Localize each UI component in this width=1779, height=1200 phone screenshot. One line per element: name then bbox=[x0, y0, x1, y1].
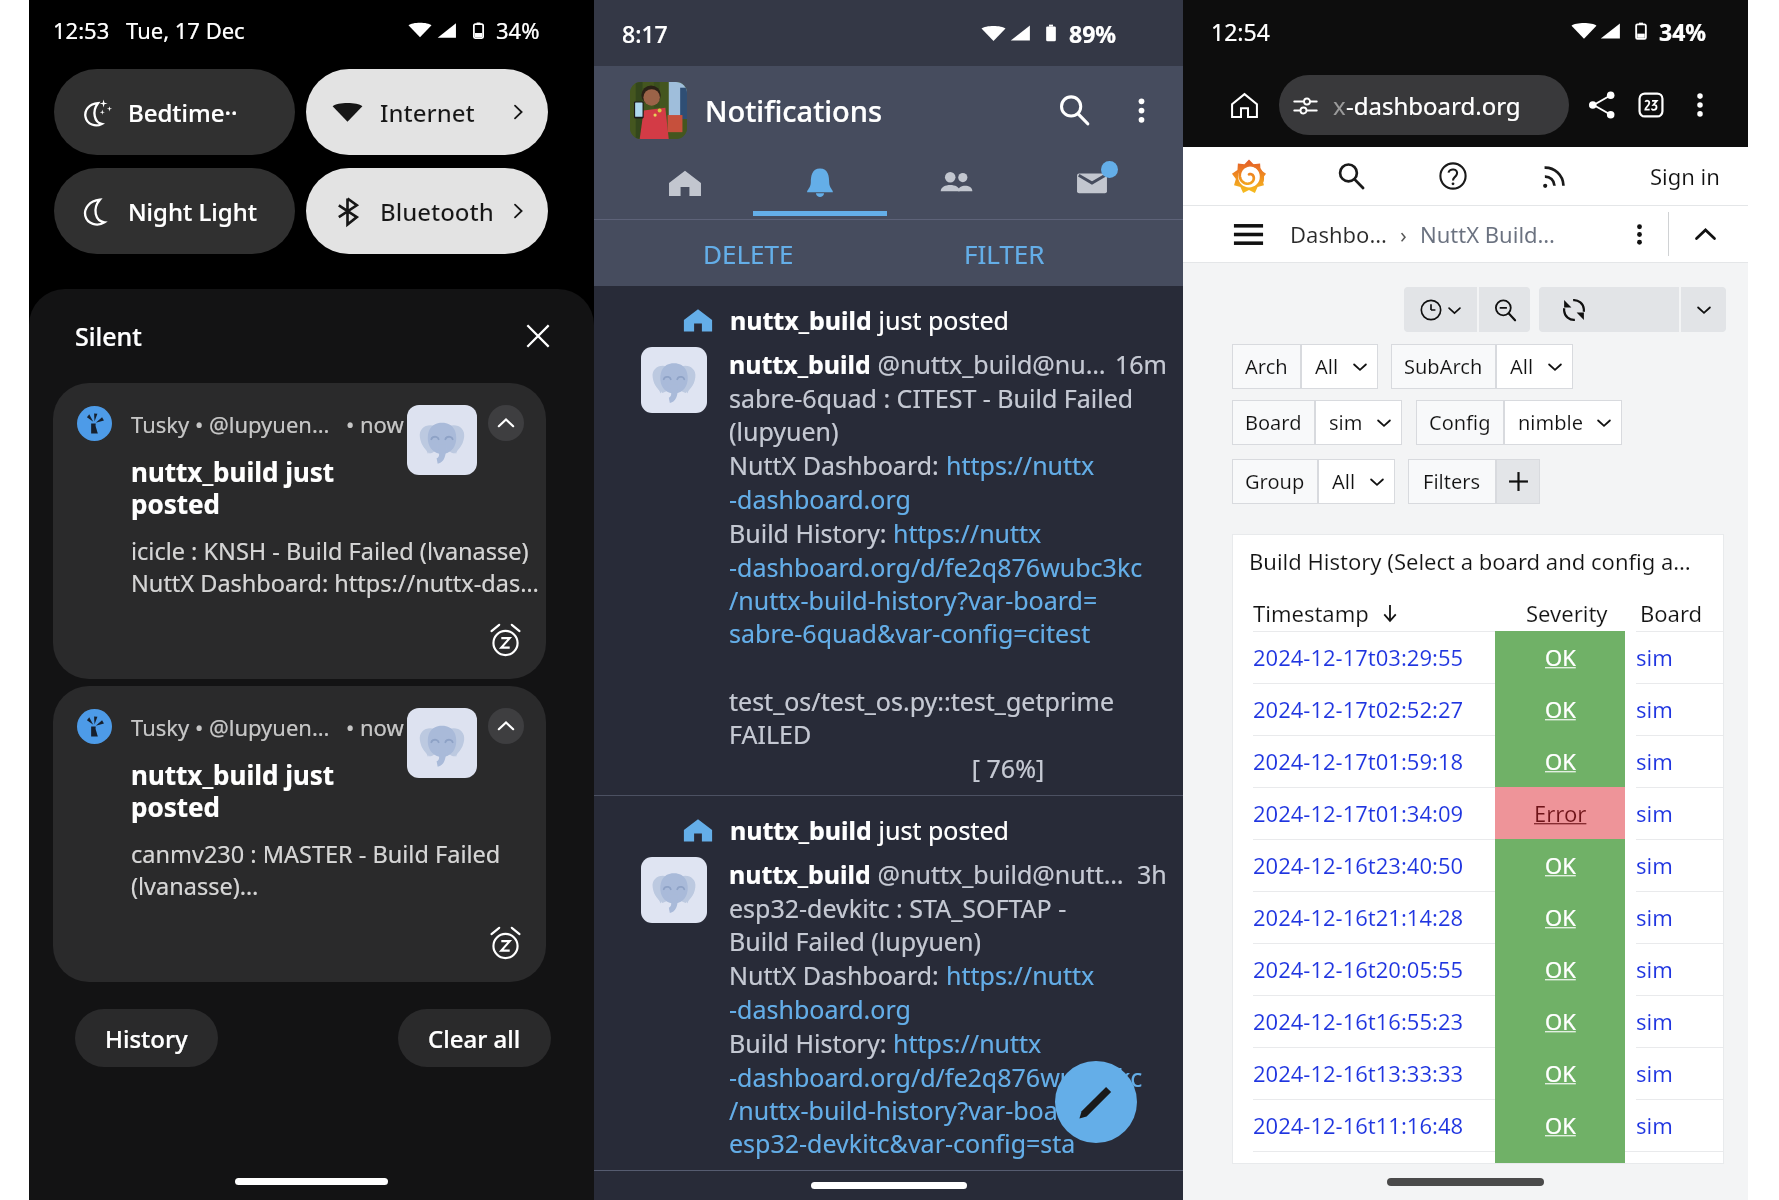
button[interactable]: DELETE bbox=[620, 220, 876, 286]
button[interactable]: nuttx_build bbox=[594, 796, 1183, 1170]
staticText: Internet bbox=[380, 96, 508, 129]
staticText: DELETE bbox=[703, 236, 794, 271]
staticText: OK bbox=[1545, 694, 1576, 724]
button[interactable]: 2024-12-16t20:05:55 bbox=[1232, 943, 1724, 995]
button[interactable]: 2024-12-16t21:14:28 bbox=[1232, 891, 1724, 943]
button[interactable]: Expand bbox=[488, 708, 524, 744]
button[interactable]: nuttx_build bbox=[594, 286, 1183, 795]
button[interactable]: Night Light bbox=[54, 168, 295, 254]
button[interactable]: Filters bbox=[1408, 459, 1496, 504]
staticText: 2024-12-17t01:34:09 bbox=[1253, 798, 1464, 828]
button[interactable]: Messages bbox=[1024, 154, 1160, 211]
button[interactable]: Share bbox=[1578, 81, 1626, 129]
button[interactable]: Menu bbox=[1226, 212, 1270, 256]
button[interactable]: Arch bbox=[1232, 344, 1301, 389]
staticText: nuttx_build bbox=[730, 813, 872, 847]
button[interactable]: Tabs bbox=[1627, 81, 1675, 129]
button[interactable]: Grafana bbox=[1227, 154, 1271, 198]
button[interactable]: All bbox=[1318, 459, 1395, 504]
button[interactable]: Search bbox=[1047, 83, 1101, 137]
button[interactable]: Clear all bbox=[398, 1009, 551, 1067]
button[interactable]: Zoom out bbox=[1479, 287, 1530, 332]
button[interactable]: FILTER bbox=[876, 220, 1133, 286]
button[interactable]: Snooze bbox=[486, 620, 524, 658]
button[interactable]: sim bbox=[1315, 400, 1402, 445]
staticText: • now bbox=[346, 712, 404, 742]
staticText: nuttx_build just posted bbox=[131, 454, 335, 522]
button[interactable]: Home bbox=[1219, 80, 1269, 130]
staticText: 34% bbox=[1659, 16, 1707, 47]
button[interactable]: 2024-12-16t16:55:23 bbox=[1232, 995, 1724, 1047]
staticText: OK bbox=[1545, 1110, 1576, 1140]
button[interactable]: Refresh interval bbox=[1681, 287, 1726, 332]
staticText: sim bbox=[1636, 798, 1673, 828]
staticText: sabre-6quad : CITEST - Build Failed (lup… bbox=[729, 381, 1134, 448]
button[interactable]: Profile bbox=[630, 82, 687, 139]
button[interactable]: Expand bbox=[488, 405, 524, 441]
button[interactable]: 2024-12-16t13:33:33 bbox=[1232, 1047, 1724, 1099]
button[interactable]: People bbox=[888, 154, 1024, 211]
button[interactable]: Help bbox=[1430, 153, 1476, 199]
button[interactable]: Expand bbox=[53, 383, 546, 679]
button[interactable]: Notifications bbox=[752, 154, 888, 211]
button[interactable]: Board bbox=[1232, 400, 1315, 445]
staticText: 12:53 bbox=[53, 15, 110, 45]
button[interactable]: 2024-12-16t23:40:50 bbox=[1232, 839, 1724, 891]
button[interactable]: Refresh bbox=[1539, 287, 1679, 332]
staticText: Bluetooth bbox=[380, 195, 508, 228]
staticText: icicle : KNSH - Build Failed (lvanasse) bbox=[131, 535, 529, 567]
button[interactable]: 2024-12-17t03:29:55 bbox=[1232, 631, 1724, 683]
button[interactable]: Bluetooth bbox=[306, 168, 548, 254]
button[interactable]: Search bbox=[1328, 153, 1374, 199]
button[interactable]: All bbox=[1301, 344, 1378, 389]
button[interactable]: Snooze bbox=[486, 923, 524, 961]
button[interactable]: 2024-12-17t01:34:09 bbox=[1232, 787, 1724, 839]
button[interactable]: Group bbox=[1232, 459, 1318, 504]
button[interactable]: Internet bbox=[306, 69, 548, 155]
staticText: Error bbox=[1534, 798, 1587, 828]
staticText: Silent bbox=[75, 319, 142, 353]
button[interactable]: Close bbox=[516, 314, 560, 358]
button[interactable]: Time range bbox=[1404, 287, 1477, 332]
staticText: OK bbox=[1545, 746, 1576, 776]
button[interactable]: NuttX Build… bbox=[1420, 211, 1555, 257]
button[interactable]: SubArch bbox=[1391, 344, 1496, 389]
staticText: 2024-12-16t13:33:33 bbox=[1253, 1058, 1464, 1088]
button[interactable]: Sign in bbox=[1644, 153, 1726, 199]
button[interactable]: nimble bbox=[1504, 400, 1622, 445]
button[interactable]: More options bbox=[1121, 90, 1161, 130]
button[interactable]: Home bbox=[617, 154, 752, 211]
staticText: -dashboard.org bbox=[729, 482, 911, 516]
button[interactable]: 2024-12-17t01:59:18 bbox=[1232, 735, 1724, 787]
button[interactable]: 2024-12-16t11:16:48 bbox=[1232, 1099, 1724, 1151]
button[interactable]: 2024-12-17t02:52:27 bbox=[1232, 683, 1724, 735]
button[interactable]: Collapse bbox=[1685, 214, 1725, 254]
button[interactable]: News bbox=[1532, 153, 1578, 199]
staticText: 89% bbox=[1069, 18, 1117, 49]
button[interactable]: Menu bbox=[1679, 84, 1721, 126]
staticText: Sign in bbox=[1650, 161, 1720, 191]
staticText: All bbox=[1332, 468, 1356, 495]
staticText: Tusky • @lupyuen… bbox=[131, 409, 330, 439]
button[interactable]: History bbox=[75, 1009, 218, 1067]
staticText: 2024-12-16t16:55:23 bbox=[1253, 1006, 1464, 1036]
button[interactable]: Add filter bbox=[1496, 459, 1540, 504]
staticText: nuttx_build bbox=[729, 857, 871, 891]
staticText: @nuttx_build@nutt… bbox=[871, 857, 1137, 891]
button[interactable]: Config bbox=[1416, 400, 1504, 445]
button[interactable]: More bbox=[1620, 215, 1658, 253]
button[interactable]: Compose bbox=[1055, 1061, 1137, 1143]
button[interactable]: x bbox=[1279, 75, 1569, 135]
button[interactable]: Dashbo… bbox=[1290, 211, 1387, 257]
staticText: SubArch bbox=[1404, 353, 1483, 380]
button[interactable]: Expand bbox=[53, 686, 546, 982]
button[interactable]: All bbox=[1496, 344, 1573, 389]
button[interactable]: Bedtime·· bbox=[54, 69, 295, 155]
staticText: sim bbox=[1636, 1006, 1673, 1036]
staticText: FILTER bbox=[964, 236, 1045, 271]
staticText: sim bbox=[1636, 694, 1673, 724]
staticText: OK bbox=[1545, 902, 1576, 932]
staticText: 8:17 bbox=[622, 18, 668, 49]
staticText: sim bbox=[1636, 1058, 1673, 1088]
staticText: just posted bbox=[872, 813, 1009, 847]
